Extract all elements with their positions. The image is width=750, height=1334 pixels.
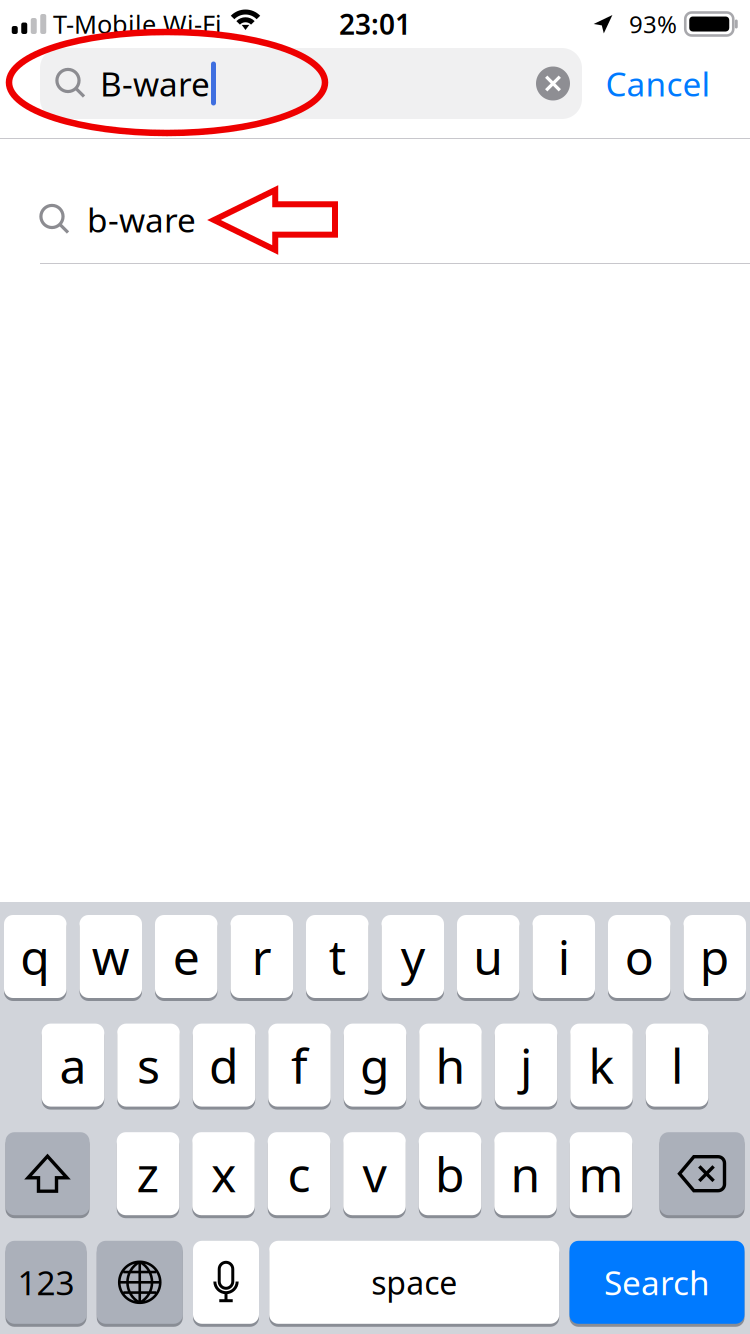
button[interactable]: f: [268, 1024, 331, 1110]
button[interactable]: b-ware: [0, 176, 750, 264]
button[interactable]: p: [683, 915, 746, 1001]
button[interactable]: Shift: [5, 1132, 89, 1218]
staticText: T-Mobile Wi-Fi: [53, 7, 222, 41]
staticText: o: [625, 925, 654, 988]
button[interactable]: v: [343, 1132, 406, 1218]
staticText: 123: [17, 1260, 74, 1304]
staticText: q: [20, 925, 50, 988]
staticText: b: [435, 1142, 465, 1205]
staticText: v: [362, 1142, 386, 1205]
button[interactable]: r: [230, 915, 293, 1001]
button[interactable]: w: [79, 915, 142, 1001]
staticText: t: [329, 925, 346, 988]
button[interactable]: q: [4, 915, 66, 1001]
staticText: i: [558, 925, 570, 988]
button[interactable]: Search: [569, 1241, 744, 1327]
staticText: 93%: [629, 8, 677, 40]
staticText: j: [520, 1033, 532, 1097]
button[interactable]: s: [117, 1024, 180, 1110]
staticText: g: [360, 1033, 390, 1097]
staticText: y: [401, 925, 425, 988]
button[interactable]: y: [381, 915, 444, 1001]
staticText: r: [252, 925, 272, 988]
staticText: e: [173, 925, 200, 988]
button[interactable]: d: [193, 1024, 255, 1110]
button[interactable]: j: [495, 1024, 557, 1110]
staticText: m: [578, 1142, 623, 1205]
staticText: k: [588, 1033, 614, 1097]
button[interactable]: u: [457, 915, 519, 1001]
button[interactable]: space: [269, 1241, 559, 1327]
button[interactable]: k: [570, 1024, 633, 1110]
staticText: l: [671, 1033, 683, 1097]
staticText: z: [136, 1142, 159, 1205]
button[interactable]: a: [42, 1024, 104, 1110]
button[interactable]: i: [532, 915, 595, 1001]
staticText: b-ware: [87, 197, 196, 242]
staticText: n: [510, 1142, 540, 1205]
button[interactable]: Dictate: [193, 1241, 259, 1327]
staticText: f: [291, 1033, 308, 1097]
staticText: p: [700, 925, 730, 988]
button[interactable]: Cancel: [594, 48, 722, 119]
button[interactable]: t: [306, 915, 368, 1001]
staticText: h: [435, 1033, 465, 1097]
staticText: x: [211, 1142, 236, 1205]
button[interactable]: c: [268, 1132, 330, 1218]
staticText: 23:01: [339, 5, 411, 43]
button[interactable]: e: [155, 915, 217, 1001]
staticText: a: [59, 1033, 86, 1097]
button[interactable]: b: [419, 1132, 481, 1218]
button[interactable]: B-ware: [40, 48, 582, 119]
staticText: space: [371, 1261, 457, 1304]
staticText: s: [137, 1033, 160, 1097]
button[interactable]: x: [192, 1132, 255, 1218]
button[interactable]: g: [344, 1024, 406, 1110]
button[interactable]: 123: [5, 1241, 86, 1327]
staticText: w: [92, 925, 130, 988]
staticText: d: [209, 1033, 239, 1097]
button[interactable]: m: [570, 1132, 632, 1218]
staticText: u: [473, 925, 503, 988]
button[interactable]: Next keyboard: [97, 1241, 183, 1327]
button[interactable]: h: [419, 1024, 482, 1110]
staticText: c: [287, 1142, 310, 1205]
button[interactable]: o: [608, 915, 670, 1001]
button[interactable]: n: [494, 1132, 557, 1218]
button[interactable]: Delete: [659, 1132, 744, 1218]
button[interactable]: Clear text: [524, 48, 582, 119]
staticText: B-ware: [100, 61, 210, 106]
button[interactable]: l: [646, 1024, 708, 1110]
staticText: Cancel: [605, 61, 710, 106]
staticText: Search: [604, 1260, 710, 1304]
button[interactable]: z: [117, 1132, 179, 1218]
